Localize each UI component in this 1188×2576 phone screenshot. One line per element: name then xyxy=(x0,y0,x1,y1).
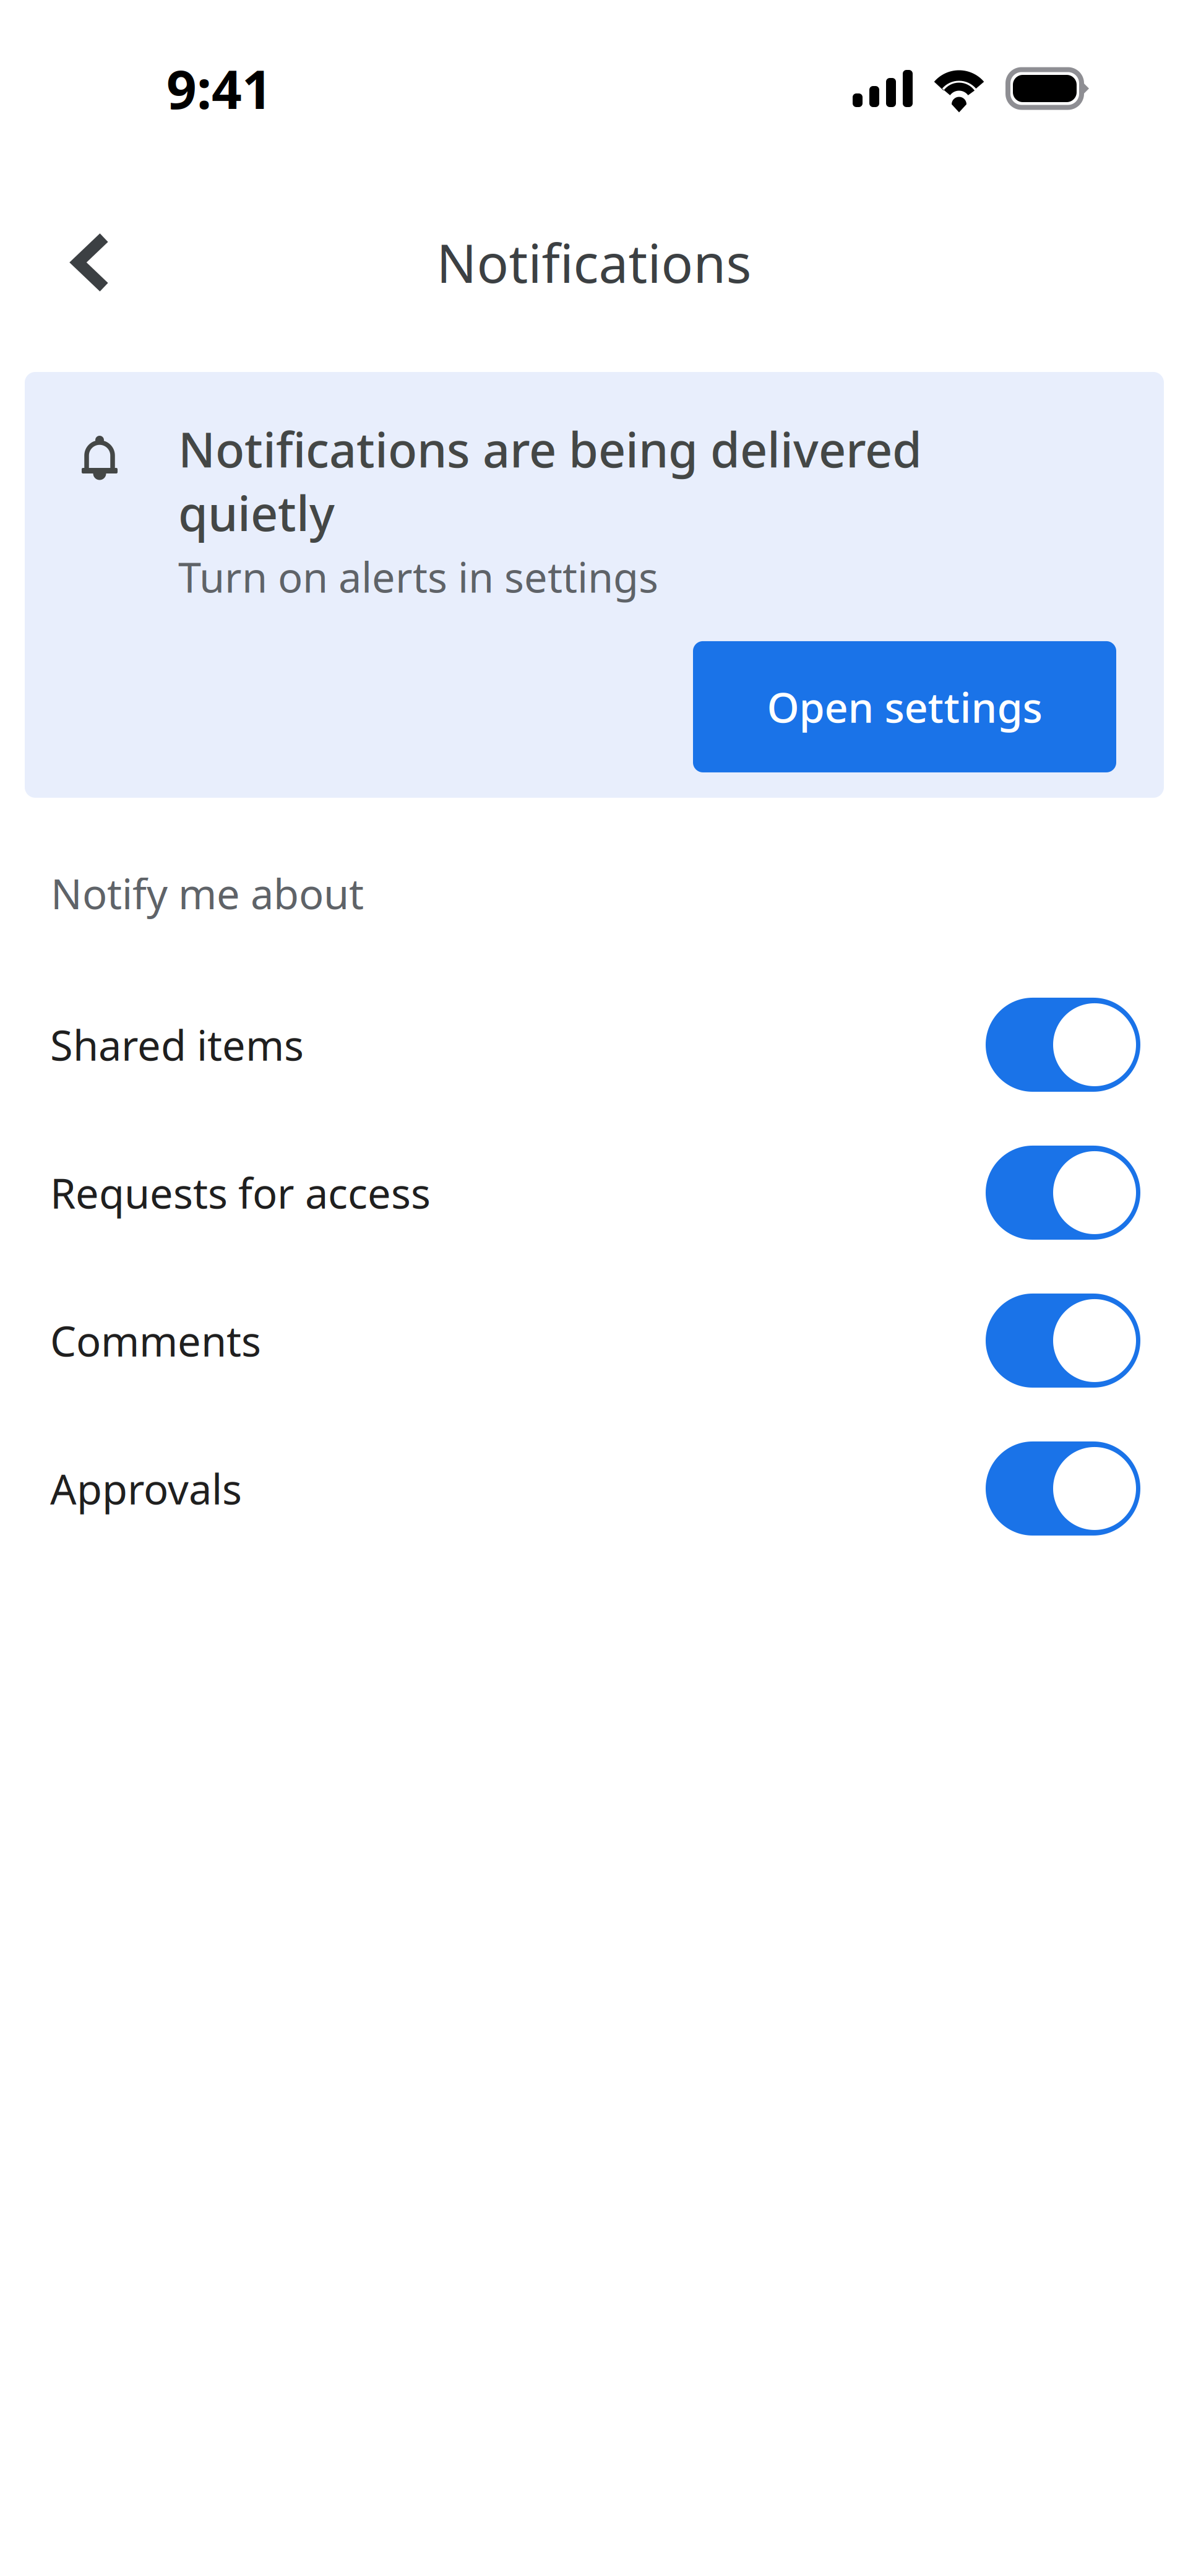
button[interactable]: Comments xyxy=(0,1267,1188,1415)
staticText: 9:41 xyxy=(166,53,272,124)
button[interactable]: Requests for access xyxy=(0,1119,1188,1267)
staticText: Turn on alerts in settings xyxy=(178,549,658,604)
button[interactable]: Back xyxy=(41,216,140,309)
staticText: Open settings xyxy=(767,679,1042,734)
staticText: Approvals xyxy=(50,1461,242,1516)
staticText: Shared items xyxy=(50,1017,304,1072)
staticText: Notify me about xyxy=(51,866,364,921)
button[interactable]: Shared items xyxy=(0,971,1188,1119)
button[interactable]: Open settings xyxy=(693,641,1116,772)
staticText: Notifications are being delivered quietl… xyxy=(178,417,922,544)
staticText: Requests for access xyxy=(50,1165,431,1220)
staticText: Notifications xyxy=(437,227,751,297)
button[interactable]: Approvals xyxy=(0,1415,1188,1562)
staticText: Comments xyxy=(50,1313,261,1368)
